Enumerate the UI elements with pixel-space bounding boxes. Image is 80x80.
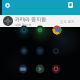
button[interactable]: Play Store (35, 64, 44, 73)
button[interactable]: Clock (35, 46, 44, 55)
button[interactable]: Messages (35, 25, 44, 34)
staticText: 카메라 중지됨 (15, 16, 47, 23)
button[interactable]: Browser (51, 64, 60, 73)
button[interactable]: Mail (19, 64, 28, 73)
staticText: 실행 중인 앱 (15, 23, 32, 27)
button[interactable]: Camera (19, 25, 28, 34)
button[interactable]: 카메라 중지됨 (0, 15, 80, 27)
button[interactable]: Chrome (51, 25, 60, 34)
button[interactable]: Settings (19, 46, 28, 55)
staticText: 모두 중지 (60, 19, 75, 24)
button[interactable]: Gallery (51, 46, 60, 55)
